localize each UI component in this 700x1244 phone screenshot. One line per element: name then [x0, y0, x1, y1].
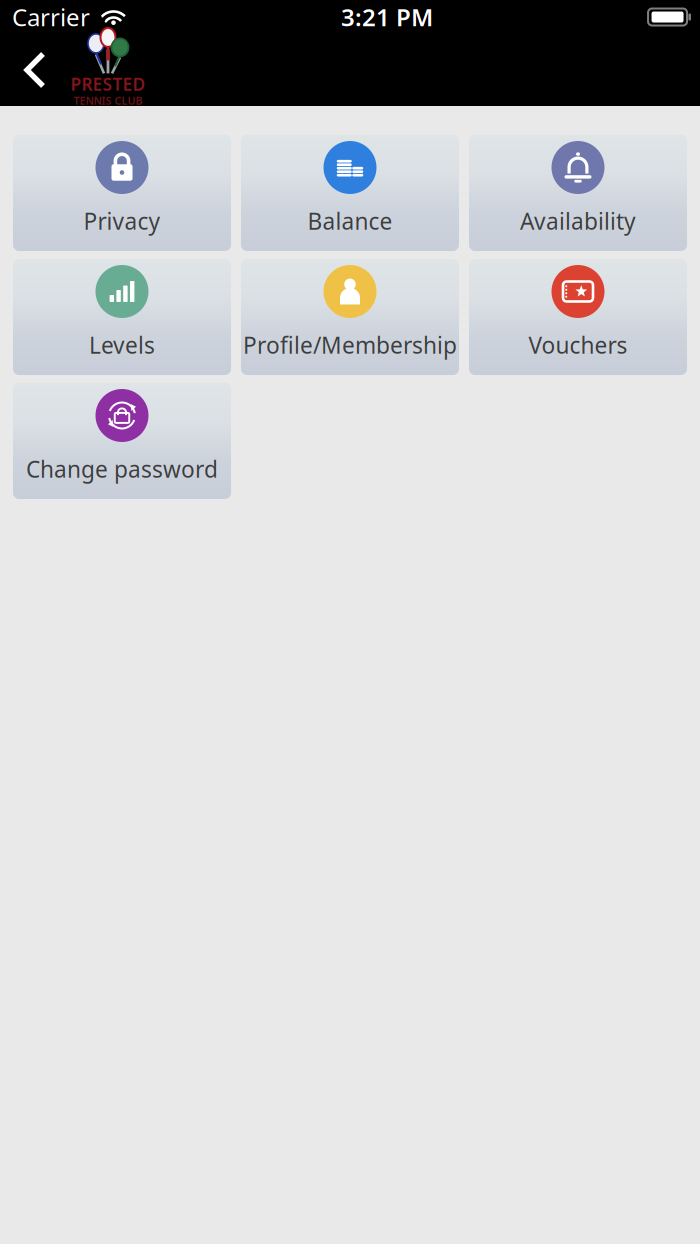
button[interactable]: Change password — [13, 383, 231, 499]
staticText: Availability — [520, 206, 636, 236]
staticText: Levels — [89, 330, 155, 360]
staticText: PRESTED — [70, 72, 145, 95]
button[interactable]: Profile/Membership — [241, 259, 459, 375]
button[interactable]: Availability — [469, 135, 687, 251]
button[interactable]: Back — [0, 34, 70, 106]
staticText: Change password — [26, 454, 218, 484]
staticText: TENNIS CLUB — [73, 93, 142, 108]
button[interactable]: Balance — [241, 135, 459, 251]
staticText: 3:21 PM — [341, 1, 433, 33]
staticText: Privacy — [83, 206, 160, 236]
staticText: Balance — [307, 206, 392, 236]
button[interactable]: Privacy — [13, 135, 231, 251]
button[interactable]: Vouchers — [469, 259, 687, 375]
staticText: Vouchers — [528, 330, 627, 360]
staticText: Carrier — [12, 1, 90, 33]
button[interactable]: Levels — [13, 259, 231, 375]
staticText: Profile/Membership — [243, 330, 457, 360]
